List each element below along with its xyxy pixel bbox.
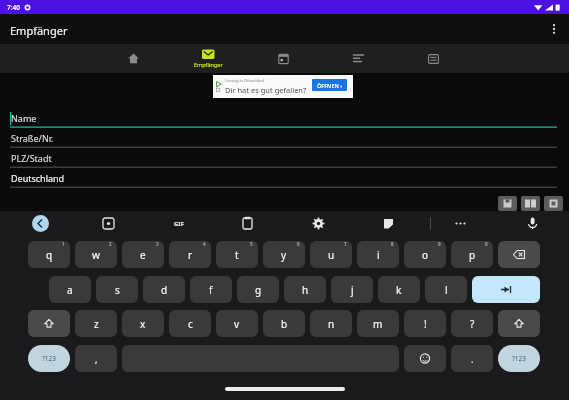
button[interactable]: m	[357, 310, 399, 337]
staticText: 7:40	[7, 3, 20, 12]
button[interactable]: e	[122, 241, 164, 268]
button[interactable]: w	[75, 241, 117, 268]
button[interactable]: j	[331, 276, 373, 303]
staticText: ,	[95, 353, 98, 365]
button[interactable]: ?123	[28, 345, 70, 372]
staticText: p	[469, 248, 476, 262]
button[interactable]: PLZ/Stadt	[10, 150, 559, 168]
button[interactable]: l	[425, 276, 467, 303]
button[interactable]: Empfänger	[171, 44, 246, 73]
button[interactable]: Backspace	[498, 241, 540, 268]
button[interactable]: b	[263, 310, 305, 337]
staticText: 8	[391, 241, 394, 247]
button[interactable]: n	[310, 310, 352, 337]
button[interactable]: Name	[10, 110, 559, 128]
button[interactable]: t	[216, 241, 258, 268]
staticText: i	[377, 248, 380, 262]
staticText: u	[328, 248, 335, 262]
staticText: Empfänger	[10, 23, 68, 38]
staticText: z	[94, 317, 99, 331]
button[interactable]: r	[169, 241, 211, 268]
staticText: ?123	[42, 354, 56, 363]
staticText: o	[422, 248, 429, 262]
button[interactable]: Contacts	[521, 196, 540, 211]
staticText: y	[281, 248, 287, 262]
button[interactable]: o	[404, 241, 446, 268]
button[interactable]: h	[284, 276, 326, 303]
staticText: 0	[485, 241, 488, 247]
button[interactable]: Settings	[310, 215, 327, 232]
staticText: g	[255, 283, 262, 297]
staticText: ?	[470, 317, 475, 331]
button[interactable]: x	[122, 310, 164, 337]
staticText: m	[373, 317, 383, 331]
staticText: PLZ/Stadt	[11, 152, 52, 164]
staticText: k	[396, 283, 402, 297]
button[interactable]: Straße/Nr.	[10, 130, 559, 148]
staticText: 5	[250, 241, 253, 247]
staticText: q	[46, 248, 53, 262]
button[interactable]: f	[190, 276, 232, 303]
button[interactable]: Shift	[28, 310, 70, 337]
button[interactable]: Emoji	[404, 345, 446, 372]
button[interactable]: c	[169, 310, 211, 337]
button[interactable]: Home	[96, 44, 171, 73]
staticText: 4	[203, 241, 206, 247]
button[interactable]: !	[404, 310, 446, 337]
staticText: 9	[438, 241, 441, 247]
staticText: l	[445, 283, 448, 297]
staticText: v	[234, 317, 240, 331]
button[interactable]: Clipboard	[239, 215, 256, 232]
button[interactable]: ÖFFNEN ›	[312, 79, 347, 91]
staticText: j	[351, 283, 354, 297]
button[interactable]: u	[310, 241, 352, 268]
button[interactable]: k	[378, 276, 420, 303]
staticText: !	[424, 317, 427, 331]
button[interactable]: v	[216, 310, 258, 337]
staticText: Empfänger	[194, 61, 223, 68]
staticText: 3	[156, 241, 159, 247]
button[interactable]: g	[237, 276, 279, 303]
button[interactable]: Voice input	[524, 215, 541, 232]
button[interactable]: Delete	[544, 196, 563, 211]
button[interactable]: Save	[498, 196, 517, 211]
button[interactable]: Emoji sticker	[380, 215, 397, 232]
staticText: Umzug in Düsseldorf	[225, 78, 265, 83]
staticText: ÖFFNEN ›	[317, 82, 342, 89]
button[interactable]: ,	[75, 345, 117, 372]
button[interactable]: y	[263, 241, 305, 268]
staticText: e	[140, 248, 146, 262]
button[interactable]: z	[75, 310, 117, 337]
button[interactable]: p	[451, 241, 493, 268]
button[interactable]: ?	[451, 310, 493, 337]
button[interactable]: d	[143, 276, 185, 303]
button[interactable]: Umzug in Düsseldorf	[213, 75, 353, 98]
button[interactable]: Deutschland	[10, 170, 559, 188]
button[interactable]: .	[451, 345, 493, 372]
button[interactable]: Enter	[472, 276, 540, 303]
button[interactable]: ?123	[498, 345, 540, 372]
button[interactable]: a	[49, 276, 91, 303]
button[interactable]: q	[28, 241, 70, 268]
button[interactable]: i	[357, 241, 399, 268]
button[interactable]: Stickers	[100, 215, 117, 232]
button[interactable]: Cards	[396, 44, 471, 73]
button[interactable]: Calendar	[246, 44, 321, 73]
button[interactable]: Shift	[498, 310, 540, 337]
staticText: 7	[344, 241, 347, 247]
staticText: ?123	[512, 354, 526, 363]
staticText: a	[67, 283, 73, 297]
button[interactable]: s	[96, 276, 138, 303]
staticText: b	[281, 317, 288, 331]
button[interactable]: More	[452, 215, 469, 232]
staticText: h	[302, 283, 309, 297]
button[interactable]: More options	[546, 21, 562, 37]
staticText: c	[188, 317, 193, 331]
staticText: r	[188, 248, 193, 262]
button[interactable]: Back	[32, 215, 49, 232]
button[interactable]: GIF	[168, 215, 190, 232]
staticText: GIF	[174, 220, 184, 228]
button[interactable]: List	[321, 44, 396, 73]
staticText: Name	[11, 112, 37, 124]
